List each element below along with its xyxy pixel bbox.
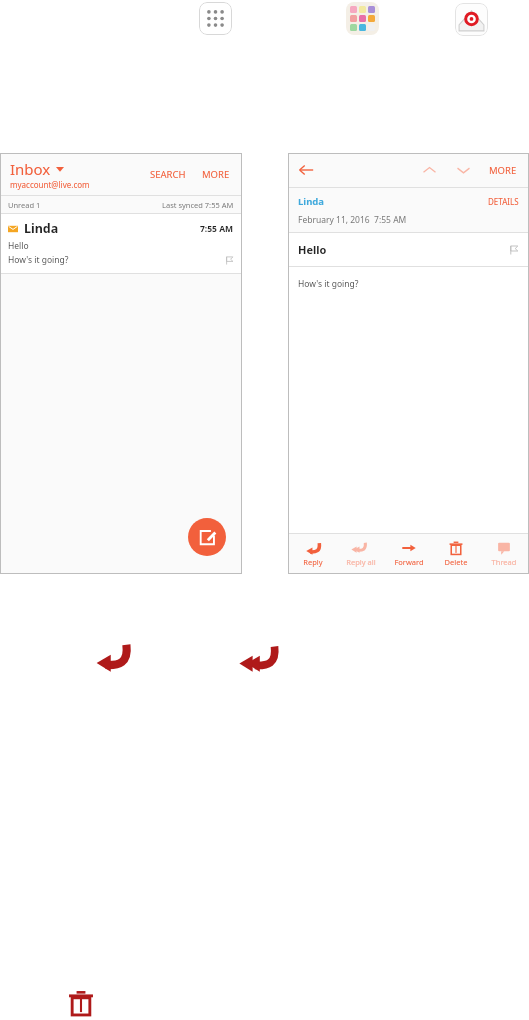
staticText: How's it going? [298, 278, 359, 290]
staticText: MORE [489, 164, 517, 177]
button[interactable]: Linda [298, 195, 486, 208]
button[interactable]: Delete [64, 986, 98, 1020]
button[interactable]: Inbox [10, 159, 146, 190]
button[interactable]: Next [451, 158, 475, 182]
staticText: Hello [8, 240, 29, 252]
button[interactable]: Back [298, 160, 318, 180]
button[interactable]: Email [455, 3, 488, 36]
staticText: February 11, 2016 7:55 AM [298, 214, 407, 226]
staticText: Last synced 7:55 AM [162, 200, 234, 210]
staticText: Linda [298, 195, 325, 208]
staticText: Linda [24, 220, 200, 237]
staticText: Forward [386, 557, 432, 567]
button[interactable]: Reply all [338, 538, 384, 570]
button[interactable]: DETAILS [486, 194, 521, 209]
button[interactable]: Previous [417, 158, 441, 182]
button[interactable]: Linda [0, 214, 242, 273]
button[interactable]: Reply [290, 538, 336, 570]
staticText: Delete [433, 557, 479, 567]
button[interactable]: Apps folder [346, 2, 379, 35]
button[interactable]: Apps [199, 2, 232, 35]
staticText: Reply all [338, 557, 384, 567]
staticText: How's it going? [8, 254, 225, 266]
button[interactable]: SEARCH [146, 164, 190, 185]
button[interactable]: Compose [188, 518, 226, 556]
button[interactable]: Thread [481, 538, 527, 570]
staticText: SEARCH [150, 168, 186, 181]
staticText: myaccount@live.com [10, 179, 90, 190]
button[interactable]: Forward [386, 538, 432, 570]
button[interactable]: Reply [92, 636, 132, 676]
staticText: Inbox [10, 159, 51, 179]
staticText: Reply [290, 557, 336, 567]
button[interactable]: Delete [433, 538, 479, 570]
staticText: Thread [481, 557, 527, 567]
button[interactable]: Reply all [240, 636, 282, 678]
button[interactable]: MORE [198, 164, 234, 185]
staticText: Hello [298, 242, 509, 257]
staticText: DETAILS [488, 196, 519, 207]
staticText: 7:55 AM [200, 223, 234, 235]
staticText: MORE [202, 168, 230, 181]
button[interactable]: MORE [485, 160, 521, 181]
staticText: Unread 1 [8, 200, 162, 210]
